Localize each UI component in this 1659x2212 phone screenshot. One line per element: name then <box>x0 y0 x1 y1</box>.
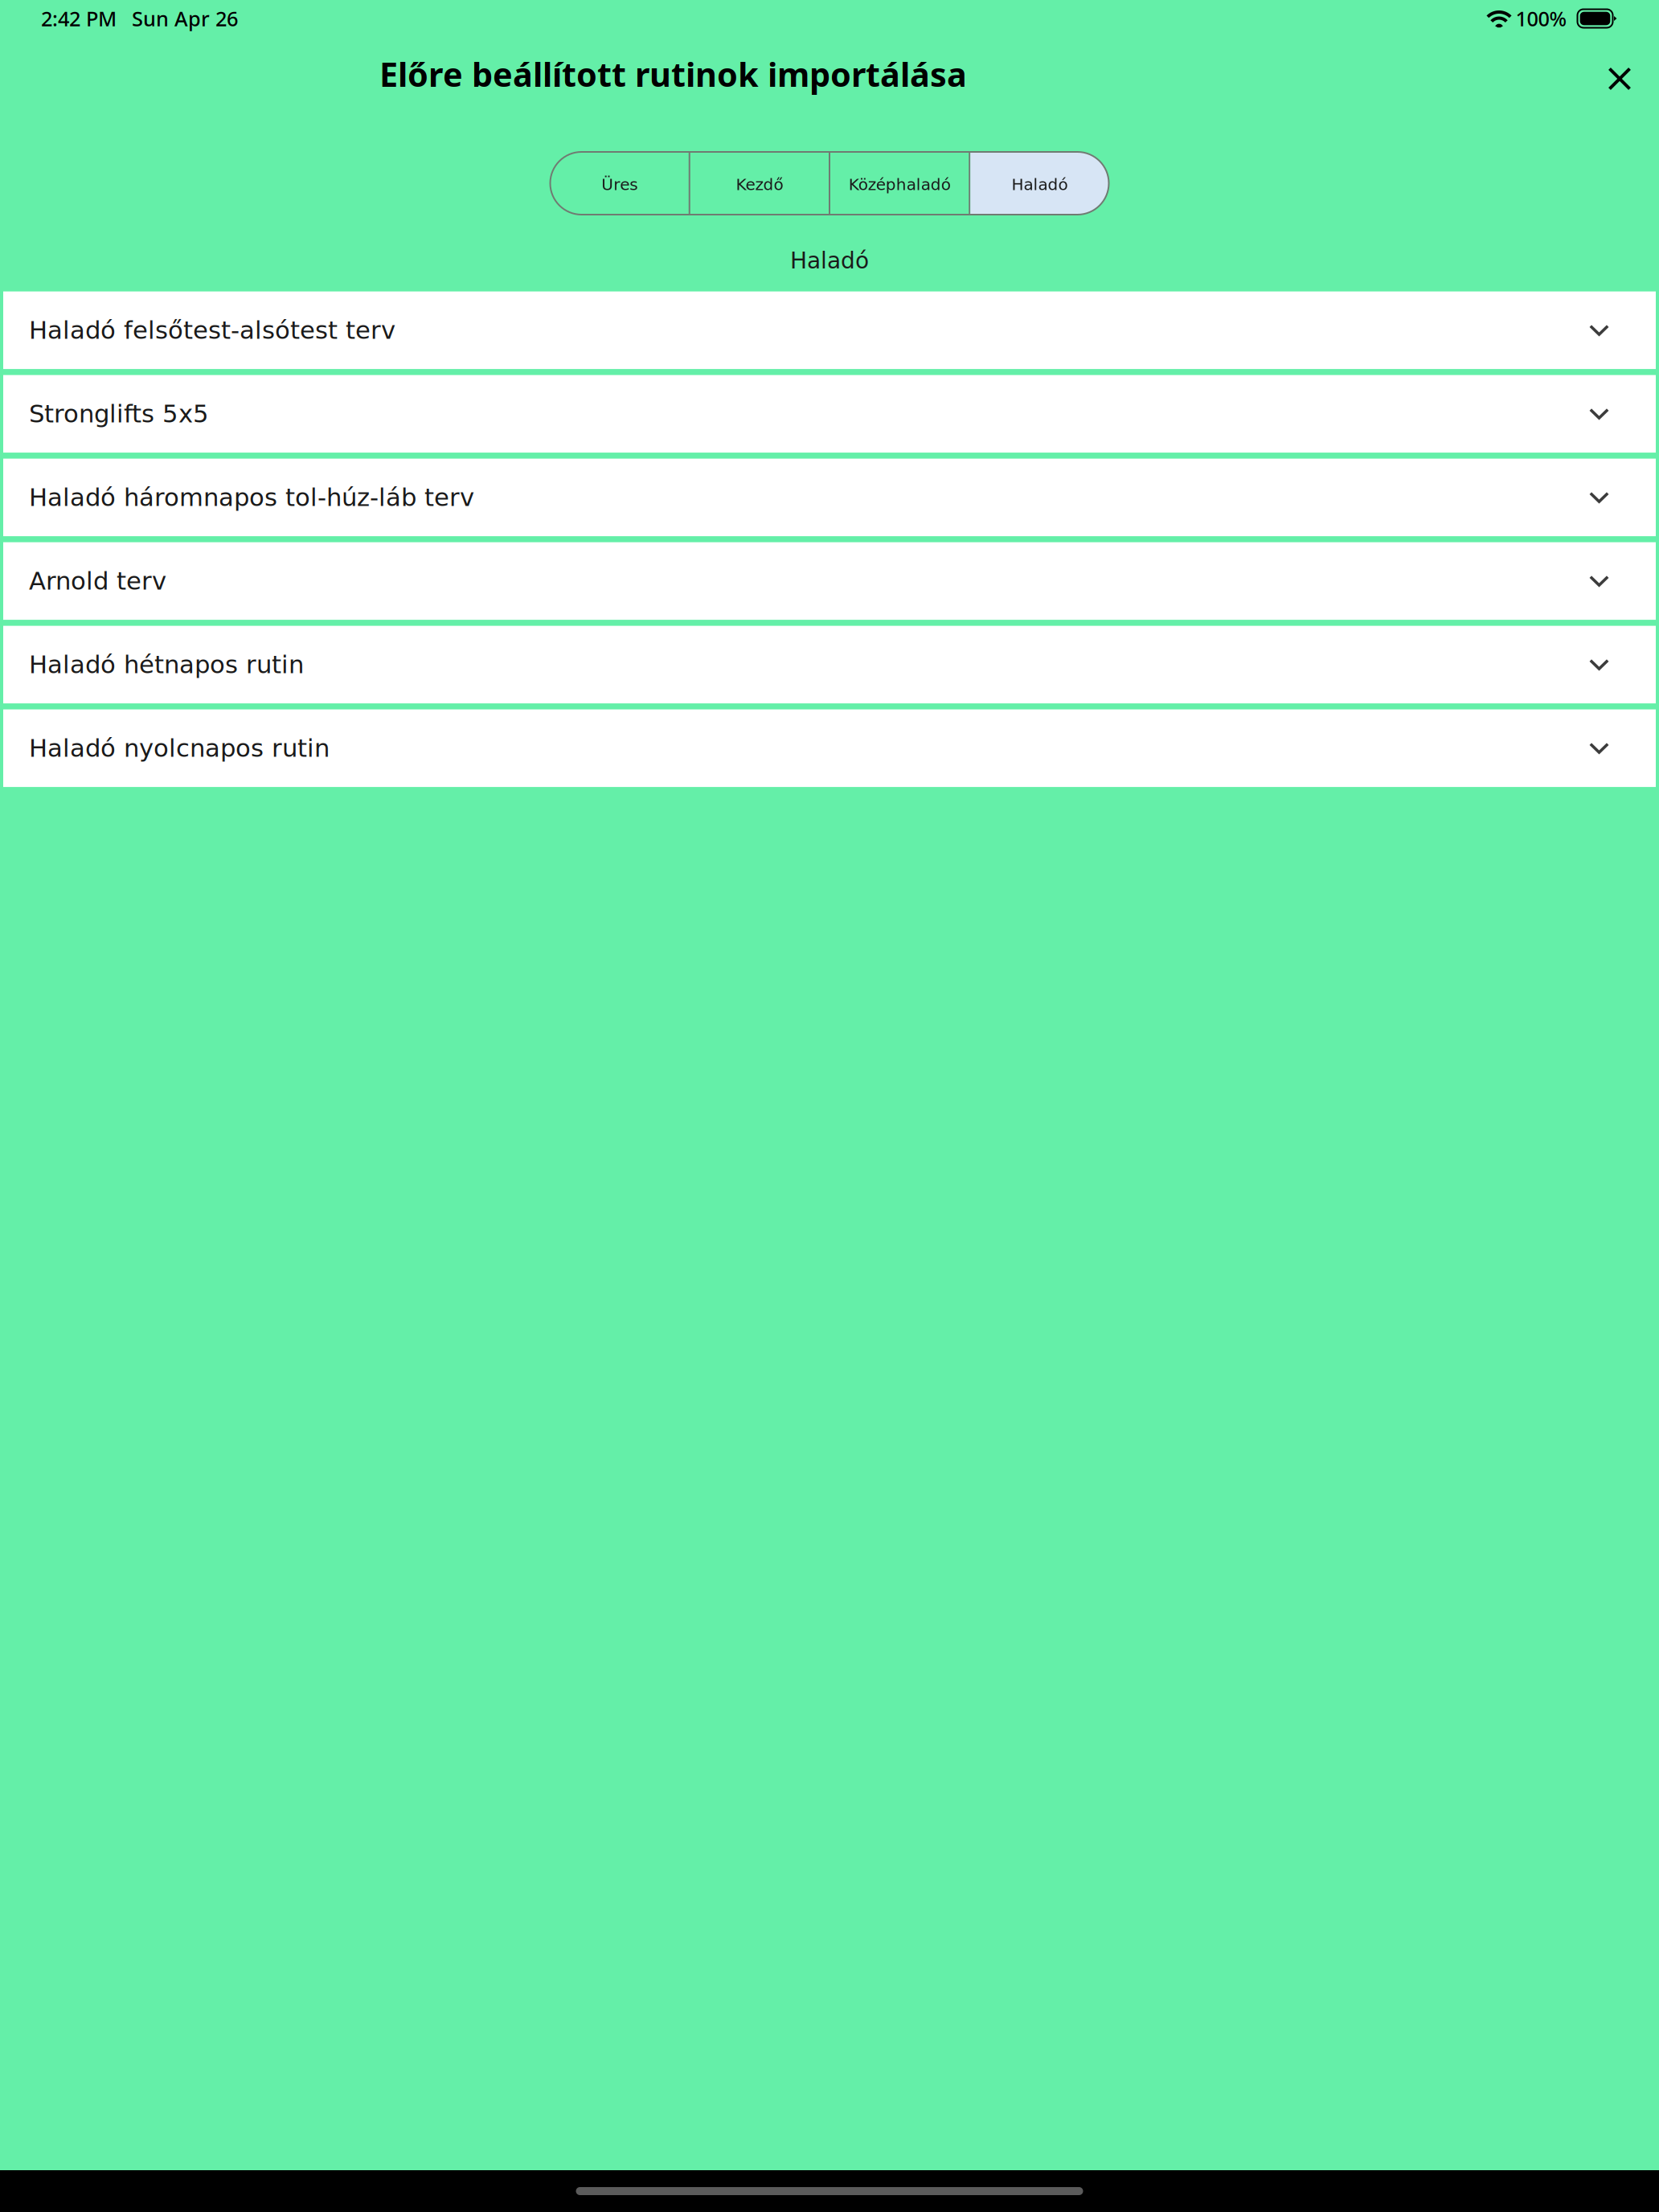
staticText: Sun Apr 26 <box>132 5 238 32</box>
staticText: 100% <box>1516 5 1567 32</box>
staticText: Haladó háromnapos tol-húz-láb terv <box>29 483 474 512</box>
button[interactable]: Haladó <box>970 152 1109 215</box>
staticText: Előre beállított rutinok importálása <box>379 52 967 96</box>
button[interactable]: Close <box>1596 55 1644 103</box>
button[interactable]: Középhaladó <box>830 152 969 215</box>
button[interactable]: Haladó nyolcnapos rutin <box>3 709 1656 787</box>
button[interactable]: Kezdő <box>690 152 829 215</box>
button[interactable]: Üres <box>550 152 689 215</box>
staticText: Kezdő <box>736 175 783 194</box>
button[interactable]: Haladó hétnapos rutin <box>3 626 1656 703</box>
staticText: Stronglifts 5x5 <box>29 399 209 428</box>
staticText: Haladó <box>790 248 869 274</box>
staticText: Középhaladó <box>848 175 951 194</box>
staticText: 2:42 PM <box>41 5 117 32</box>
staticText: Haladó hétnapos rutin <box>29 650 304 679</box>
button[interactable]: Haladó felsőtest-alsótest terv <box>3 291 1656 369</box>
button[interactable]: Stronglifts 5x5 <box>3 375 1656 453</box>
staticText: Haladó nyolcnapos rutin <box>29 734 330 763</box>
button[interactable]: Haladó háromnapos tol-húz-láb terv <box>3 459 1656 536</box>
staticText: Arnold terv <box>29 567 166 595</box>
button[interactable]: Arnold terv <box>3 542 1656 620</box>
staticText: Haladó felsőtest-alsótest terv <box>29 316 395 345</box>
staticText: Üres <box>601 175 637 194</box>
staticText: Haladó <box>1011 175 1068 194</box>
